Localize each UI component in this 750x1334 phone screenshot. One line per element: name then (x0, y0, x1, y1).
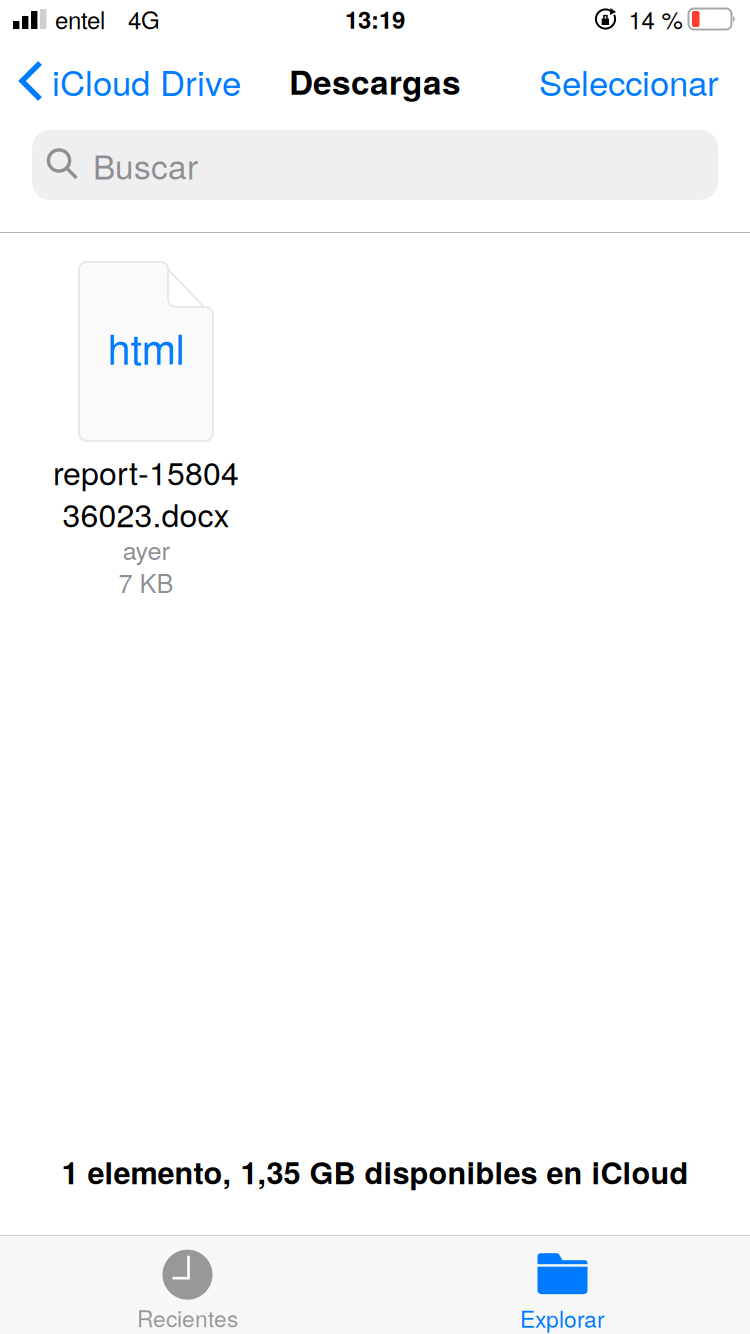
staticText: 36023.docx (62, 491, 229, 536)
staticText: iCloud Drive (52, 57, 241, 105)
staticText: 13:19 (345, 2, 405, 36)
staticText: Descargas (289, 58, 461, 104)
staticText: report-15804 (53, 449, 239, 494)
staticText: Seleccionar (539, 57, 719, 105)
staticText: Buscar (93, 142, 198, 188)
button[interactable]: html (21, 262, 271, 593)
button[interactable]: Recientes (0, 1237, 375, 1333)
button[interactable]: Explorar (375, 1236, 750, 1334)
staticText: 7 KB (118, 564, 173, 600)
staticText: html (107, 318, 184, 376)
staticText: 4G (128, 2, 160, 36)
button[interactable]: Seleccionar (539, 57, 750, 105)
staticText: entel (55, 2, 105, 36)
button[interactable]: Buscar (32, 130, 718, 200)
staticText: 1 elemento, 1,35 GB disponibles en iClou… (61, 1150, 688, 1193)
staticText: Explorar (520, 1302, 605, 1334)
button[interactable]: Back to iCloud Drive (0, 57, 241, 105)
staticText: ayer (122, 531, 169, 567)
staticText: Recientes (137, 1302, 238, 1333)
staticText: 14 % (628, 2, 682, 36)
